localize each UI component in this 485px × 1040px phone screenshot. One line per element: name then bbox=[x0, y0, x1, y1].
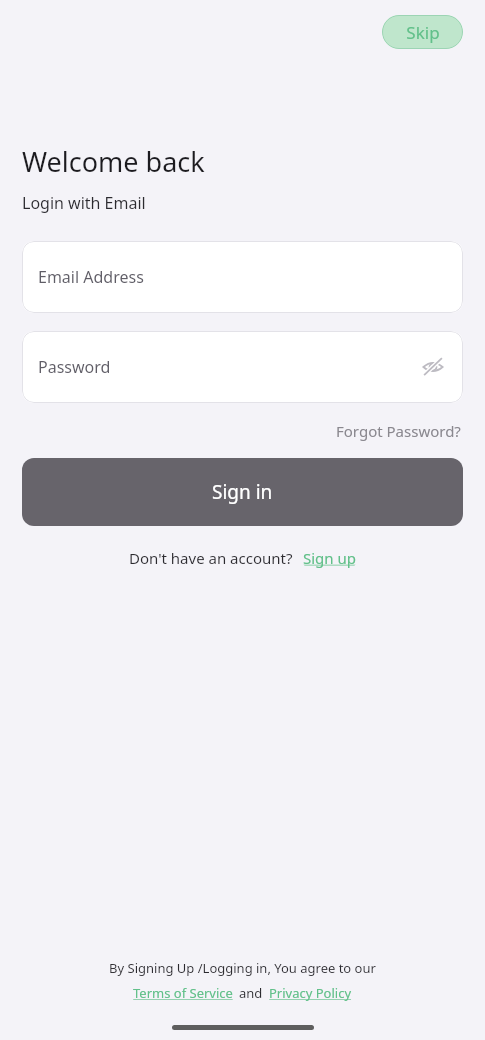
button[interactable]: Password bbox=[22, 331, 463, 403]
button[interactable]: Skip bbox=[382, 15, 463, 49]
staticText: Sign in bbox=[212, 479, 273, 505]
staticText: Don't have an account? bbox=[129, 548, 293, 568]
button[interactable]: Terms of Service bbox=[133, 984, 233, 1002]
button[interactable]: Forgot Password? bbox=[334, 417, 463, 445]
staticText: Skip bbox=[406, 21, 440, 44]
staticText: Forgot Password? bbox=[336, 421, 461, 441]
button[interactable]: Email Address bbox=[22, 241, 463, 313]
staticText: Login with Email bbox=[22, 192, 146, 214]
staticText: Email Address bbox=[38, 266, 144, 288]
button[interactable]: Show password bbox=[411, 345, 455, 389]
staticText: Password bbox=[38, 356, 111, 378]
button[interactable]: Sign up bbox=[303, 548, 356, 568]
button[interactable]: Sign in bbox=[22, 458, 463, 526]
staticText: Terms of Service bbox=[133, 984, 233, 1002]
staticText: By Signing Up /Logging in, You agree to … bbox=[109, 959, 376, 977]
button[interactable]: Privacy Policy bbox=[269, 984, 352, 1002]
staticText: and bbox=[239, 984, 263, 1002]
staticText: Welcome back bbox=[22, 143, 205, 180]
staticText: Sign up bbox=[303, 548, 356, 568]
staticText: Privacy Policy bbox=[269, 984, 352, 1002]
